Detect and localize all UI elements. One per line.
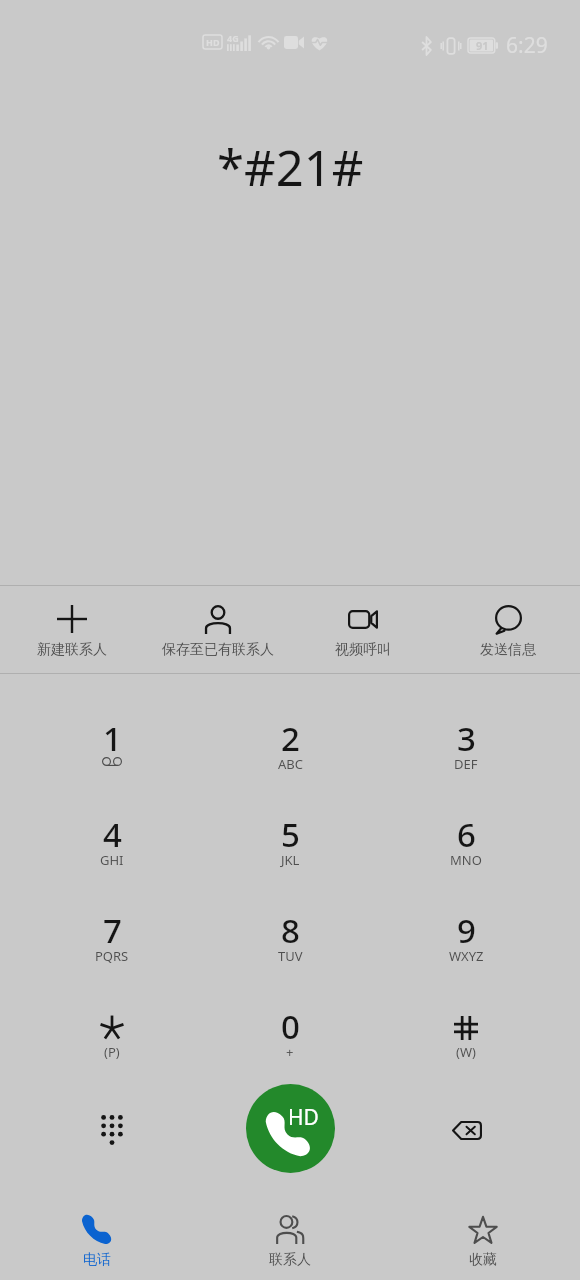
staticText: 91 bbox=[476, 38, 489, 53]
button[interactable]: 9 bbox=[378, 887, 554, 983]
staticText: 联系人 bbox=[269, 1251, 311, 1269]
button[interactable]: 6 bbox=[378, 791, 554, 887]
staticText: WXYZ bbox=[449, 947, 484, 965]
button[interactable]: 7 bbox=[24, 887, 200, 983]
staticText: 7 bbox=[103, 908, 122, 953]
staticText: HD bbox=[288, 1103, 319, 1132]
staticText: 0 bbox=[281, 1004, 300, 1049]
button[interactable]: 2 bbox=[202, 695, 378, 791]
staticText: (P) bbox=[104, 1043, 120, 1061]
staticText: GHI bbox=[100, 851, 124, 869]
button[interactable]: 收藏 bbox=[387, 1192, 579, 1280]
button[interactable]: 视频呼叫 bbox=[291, 586, 435, 673]
staticText: 发送信息 bbox=[480, 641, 536, 659]
staticText: 5 bbox=[281, 812, 300, 857]
staticText: TUV bbox=[278, 947, 303, 965]
staticText: 4G bbox=[227, 32, 239, 44]
button[interactable]: (W) bbox=[378, 983, 554, 1079]
staticText: MNO bbox=[450, 851, 482, 869]
button[interactable]: 3 bbox=[378, 695, 554, 791]
button[interactable]: 联系人 bbox=[194, 1192, 386, 1280]
button[interactable]: (P) bbox=[24, 983, 200, 1079]
staticText: 电话 bbox=[83, 1251, 111, 1269]
button[interactable]: Delete bbox=[430, 1094, 502, 1166]
staticText: 新建联系人 bbox=[37, 641, 107, 659]
button[interactable]: 1 bbox=[24, 695, 200, 791]
button[interactable]: Show keypad bbox=[76, 1094, 148, 1166]
staticText: 保存至已有联系人 bbox=[162, 641, 274, 659]
staticText: (W) bbox=[456, 1043, 476, 1061]
button[interactable]: 电话 bbox=[1, 1192, 193, 1280]
staticText: HD bbox=[206, 36, 220, 48]
staticText: 6:29 bbox=[506, 31, 548, 60]
button[interactable]: 发送信息 bbox=[436, 586, 580, 673]
staticText: 9 bbox=[457, 908, 476, 953]
staticText: JKL bbox=[281, 851, 300, 869]
button[interactable]: 4 bbox=[24, 791, 200, 887]
staticText: *#21# bbox=[217, 134, 364, 194]
staticText: 收藏 bbox=[469, 1251, 497, 1269]
staticText: + bbox=[286, 1043, 294, 1061]
button[interactable]: 8 bbox=[202, 887, 378, 983]
staticText: PQRS bbox=[95, 947, 129, 965]
staticText: 4 bbox=[103, 812, 122, 857]
staticText: 8 bbox=[281, 908, 300, 953]
staticText: 1 bbox=[103, 716, 122, 761]
button[interactable]: 新建联系人 bbox=[0, 586, 144, 673]
staticText: 6 bbox=[457, 812, 476, 857]
staticText: 2 bbox=[281, 716, 300, 761]
button[interactable]: 保存至已有联系人 bbox=[146, 586, 290, 673]
button[interactable]: 0 bbox=[202, 983, 378, 1079]
button[interactable]: 5 bbox=[202, 791, 378, 887]
staticText: 3 bbox=[457, 716, 476, 761]
staticText: 视频呼叫 bbox=[335, 641, 391, 659]
staticText: ABC bbox=[278, 755, 303, 773]
staticText: DEF bbox=[454, 755, 478, 773]
button[interactable]: Call bbox=[246, 1084, 335, 1173]
